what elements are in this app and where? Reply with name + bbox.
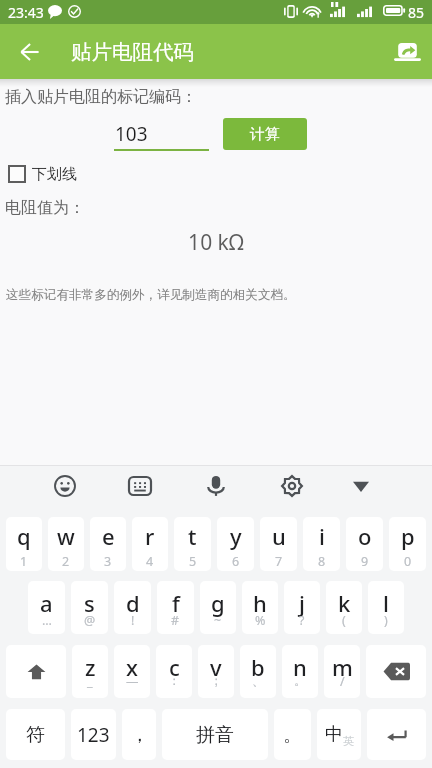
staticText: 贴片电阻代码 xyxy=(71,39,194,65)
staticText: u xyxy=(272,521,286,551)
staticText: b xyxy=(251,652,265,682)
staticText: 电阻值为： xyxy=(5,198,85,218)
staticText: i xyxy=(319,521,325,551)
button[interactable]: 符 xyxy=(6,709,65,760)
button[interactable]: Keyboard xyxy=(120,466,160,506)
staticText: 9 xyxy=(361,553,369,570)
staticText: ； xyxy=(210,673,223,689)
staticText: 3 xyxy=(104,553,112,570)
staticText: v xyxy=(210,652,222,682)
staticText: o xyxy=(358,521,372,551)
staticText: 4 xyxy=(146,553,154,570)
button[interactable]: u xyxy=(260,517,297,571)
staticText: r xyxy=(145,521,155,551)
staticText: … xyxy=(42,612,52,629)
staticText: 6 xyxy=(232,553,240,570)
button[interactable]: Hide keyboard xyxy=(341,466,381,506)
button[interactable]: i xyxy=(303,517,340,571)
staticText: w xyxy=(57,521,75,551)
button[interactable]: k xyxy=(326,581,362,634)
staticText: p xyxy=(401,521,415,551)
button[interactable]: 中 xyxy=(317,709,361,760)
staticText: 5 xyxy=(189,553,197,570)
staticText: d xyxy=(126,588,140,618)
staticText: 1 xyxy=(20,553,28,570)
button[interactable]: w xyxy=(48,517,84,571)
button[interactable]: Settings xyxy=(272,466,312,506)
staticText: 103 xyxy=(115,121,148,147)
button[interactable]: Back xyxy=(11,34,47,70)
button[interactable]: n xyxy=(282,645,318,698)
button[interactable]: p xyxy=(389,517,426,571)
staticText: 23:43 xyxy=(8,3,44,22)
button[interactable]: l xyxy=(368,581,404,634)
button[interactable]: d xyxy=(114,581,151,634)
staticText: z xyxy=(85,652,96,682)
staticText: ? xyxy=(299,612,305,629)
button[interactable]: 拼音 xyxy=(162,709,268,760)
button[interactable]: q xyxy=(6,517,42,571)
staticText: t xyxy=(188,521,197,551)
staticText: k xyxy=(338,588,351,618)
button[interactable]: 下划线 xyxy=(4,161,77,187)
button[interactable]: e xyxy=(90,517,126,571)
staticText: l xyxy=(383,588,389,618)
staticText: n xyxy=(293,652,307,682)
staticText: 85 xyxy=(408,3,425,22)
button[interactable]: Shift xyxy=(6,645,66,698)
staticText: x xyxy=(126,652,138,682)
staticText: h xyxy=(253,588,267,618)
button[interactable]: Emoji xyxy=(45,466,85,506)
button[interactable]: z xyxy=(72,645,108,698)
staticText: # xyxy=(171,612,180,629)
staticText: q xyxy=(17,521,31,551)
staticText: ： xyxy=(168,673,181,689)
staticText: ~ xyxy=(214,612,222,629)
button[interactable]: ， xyxy=(122,709,156,760)
button[interactable]: b xyxy=(240,645,276,698)
staticText: @ xyxy=(84,612,96,629)
button[interactable]: f xyxy=(157,581,194,634)
button[interactable]: t xyxy=(174,517,211,571)
staticText: y xyxy=(230,521,242,551)
button[interactable]: m xyxy=(324,645,360,698)
button[interactable]: c xyxy=(156,645,192,698)
button[interactable]: y xyxy=(217,517,254,571)
button[interactable]: s xyxy=(71,581,108,634)
staticText: 0 xyxy=(404,553,412,570)
button[interactable]: Voice input xyxy=(196,466,236,506)
button[interactable]: a xyxy=(28,581,65,634)
staticText: 符 xyxy=(26,723,45,747)
button[interactable]: Backspace xyxy=(366,645,426,698)
staticText: j xyxy=(299,588,305,618)
staticText: ( xyxy=(342,612,346,629)
button[interactable]: j xyxy=(284,581,320,634)
staticText: 这些标记有非常多的例外，详见制造商的相关文档。 xyxy=(6,287,296,303)
staticText: 拼音 xyxy=(196,723,234,747)
button[interactable]: 。 xyxy=(274,709,311,760)
staticText: 10 kΩ xyxy=(0,228,432,257)
staticText: 。 xyxy=(283,723,302,747)
button[interactable]: 123 xyxy=(71,709,116,760)
button[interactable]: Cast screen xyxy=(385,30,429,74)
button[interactable]: 计算 xyxy=(223,118,307,150)
staticText: c xyxy=(169,652,180,682)
staticText: a xyxy=(40,588,53,618)
staticText: m xyxy=(332,652,353,682)
staticText: ， xyxy=(130,723,149,747)
button[interactable]: x xyxy=(114,645,150,698)
button[interactable]: v xyxy=(198,645,234,698)
staticText: 、 xyxy=(252,673,265,689)
staticText: — xyxy=(126,673,139,690)
staticText: ) xyxy=(384,612,388,629)
staticText: 。 xyxy=(294,673,307,689)
button[interactable]: g xyxy=(200,581,236,634)
staticText: ! xyxy=(131,612,135,629)
button[interactable]: h xyxy=(242,581,278,634)
button[interactable]: o xyxy=(346,517,383,571)
button[interactable]: r xyxy=(132,517,168,571)
button[interactable]: Enter xyxy=(367,709,426,760)
staticText: % xyxy=(255,612,266,629)
staticText: e xyxy=(102,521,115,551)
staticText: 下划线 xyxy=(32,165,77,184)
